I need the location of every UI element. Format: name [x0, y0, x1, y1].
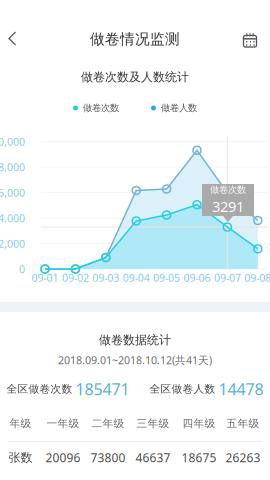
staticText: 全区做卷人数	[149, 382, 215, 395]
staticText: 14478	[218, 378, 263, 400]
staticText: 2018.09.01~2018.10.12(共41天)	[58, 353, 212, 367]
staticText: 三年级	[136, 417, 169, 430]
staticText: 做卷次数及人数统计	[81, 70, 189, 84]
staticText: 09-03	[92, 270, 119, 285]
staticText: 五年级	[226, 417, 259, 430]
staticText: 10,000	[0, 134, 25, 149]
staticText: 四年级	[182, 417, 215, 430]
staticText: 09-05	[153, 270, 180, 285]
staticText: 2,000	[0, 236, 25, 251]
staticText: 09-07	[214, 270, 241, 285]
staticText: 26263	[225, 449, 260, 465]
staticText: 一年级	[46, 417, 79, 430]
staticText: 做卷情况监测	[90, 30, 180, 48]
staticText: 185471	[75, 378, 129, 400]
staticText: 73800	[90, 449, 125, 465]
button[interactable]: Back	[0, 26, 28, 52]
staticText: 0	[19, 262, 25, 276]
staticText: 09-01	[31, 270, 58, 285]
staticText: 09-02	[62, 270, 89, 285]
staticText: 09-04	[123, 270, 150, 285]
staticText: 8,000	[0, 160, 25, 174]
staticText: 18675	[181, 449, 216, 465]
staticText: 20096	[45, 449, 80, 465]
staticText: 3291	[212, 196, 244, 216]
staticText: 做卷次数	[210, 184, 246, 195]
staticText: 46637	[135, 449, 170, 465]
staticText: 全区做卷次数	[6, 382, 72, 395]
staticText: 09-08	[244, 270, 270, 285]
staticText: 09-06	[183, 270, 210, 285]
staticText: 6,000	[0, 185, 25, 200]
staticText: 4,000	[0, 211, 25, 225]
staticText: 年级	[9, 417, 31, 430]
staticText: 做卷次数	[83, 102, 119, 114]
button[interactable]: Pick date range	[236, 27, 264, 53]
staticText: 二年级	[91, 417, 124, 430]
staticText: 张数	[8, 450, 32, 465]
staticText: 做卷人数	[161, 102, 197, 114]
staticText: 做卷数据统计	[99, 333, 171, 347]
